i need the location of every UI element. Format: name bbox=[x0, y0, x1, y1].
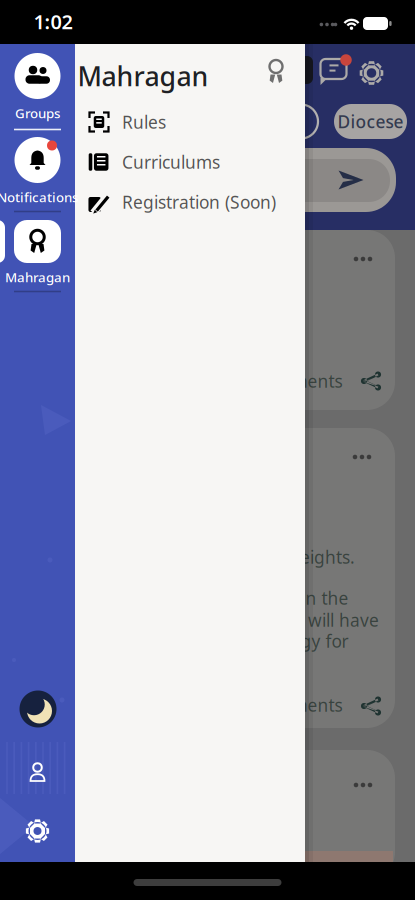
button[interactable]: Share bbox=[360, 371, 382, 391]
button[interactable]: Registration (Soon) bbox=[88, 183, 300, 221]
staticText: ments bbox=[291, 369, 342, 392]
staticText: 1:02 bbox=[33, 8, 72, 35]
staticText: gy for bbox=[300, 629, 348, 652]
button[interactable]: Settings bbox=[359, 61, 383, 85]
staticText: Mahragan bbox=[5, 268, 70, 286]
staticText: Mahragan bbox=[77, 58, 208, 94]
button[interactable]: Toggle dark mode bbox=[16, 687, 60, 731]
button[interactable]: Groups bbox=[0, 53, 75, 120]
button[interactable]: Messages bbox=[317, 55, 349, 87]
button[interactable]: Achievements bbox=[264, 60, 288, 84]
staticText: heights. bbox=[289, 545, 355, 568]
staticText: Notifications bbox=[0, 188, 78, 206]
staticText: in the bbox=[301, 586, 348, 609]
staticText: Rules bbox=[122, 110, 166, 133]
button[interactable]: Settings bbox=[17, 811, 57, 851]
button[interactable]: Notifications bbox=[0, 137, 75, 204]
staticText: Groups bbox=[15, 104, 60, 122]
button[interactable]: Share bbox=[360, 696, 382, 716]
button[interactable]: More options bbox=[352, 255, 373, 263]
button[interactable]: Diocese bbox=[334, 104, 407, 139]
staticText: ments bbox=[291, 693, 342, 716]
button[interactable]: Profile bbox=[17, 753, 57, 793]
button[interactable]: Send bbox=[338, 170, 363, 189]
staticText: Registration (Soon) bbox=[122, 190, 276, 213]
button[interactable]: More options bbox=[351, 453, 372, 461]
button[interactable]: Rules bbox=[88, 103, 294, 141]
staticText: Curriculums bbox=[122, 150, 220, 173]
staticText: e will have bbox=[293, 608, 379, 631]
button[interactable]: Mahragan bbox=[0, 220, 75, 284]
button[interactable]: More options bbox=[352, 781, 373, 789]
staticText: Diocese bbox=[337, 110, 403, 133]
button[interactable]: Curriculums bbox=[88, 143, 294, 181]
